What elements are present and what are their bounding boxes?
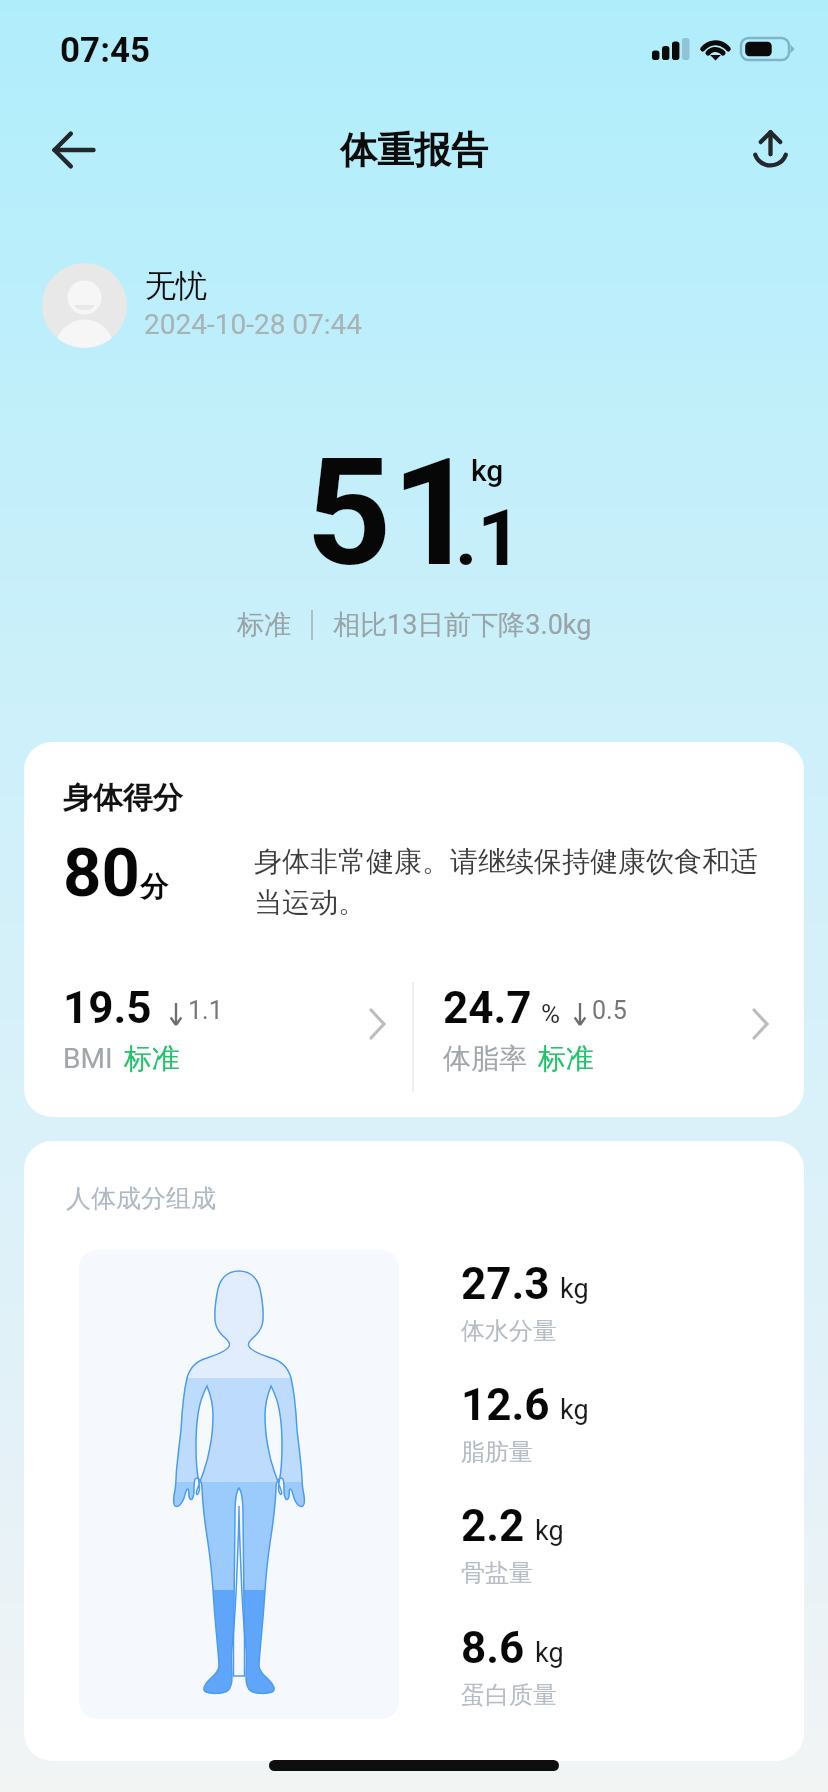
staticText: 07:45 [60, 30, 151, 71]
button[interactable]: Share [730, 110, 810, 190]
staticText: 身体得分 [63, 779, 183, 817]
staticText: kg [535, 1515, 564, 1547]
staticText: 体脂率 [443, 1041, 527, 1076]
button[interactable]: 19.5 [24, 970, 412, 1095]
staticText: .1 [455, 494, 522, 584]
staticText: 24.7 [443, 982, 532, 1034]
staticText: BMI [63, 1042, 113, 1075]
button[interactable]: Back [34, 110, 114, 190]
staticText: 12.6 [461, 1379, 550, 1431]
staticText: 8.6 [461, 1622, 525, 1674]
staticText: 80 [63, 834, 140, 913]
staticText: 0.5 [592, 996, 627, 1025]
staticText: kg [471, 453, 504, 488]
staticText: 27.3 [461, 1258, 550, 1310]
staticText: 人体成分组成 [66, 1183, 216, 1214]
staticText: 2.2 [461, 1500, 525, 1552]
staticText: 身体非常健康。请继续保持健康饮食和适当运动。 [254, 844, 776, 920]
staticText: 相比13日前下降3.0kg [333, 608, 592, 642]
staticText: kg [560, 1394, 589, 1426]
staticText: 2024-10-28 07:44 [144, 308, 363, 341]
staticText: 标准 [538, 1041, 594, 1076]
staticText: 脂肪量 [461, 1437, 533, 1467]
staticText: 无忧 [145, 266, 207, 305]
staticText: 蛋白质量 [461, 1680, 557, 1710]
staticText: kg [535, 1637, 564, 1669]
staticText: 骨盐量 [461, 1558, 533, 1588]
staticText: 51 [306, 426, 477, 601]
staticText: 19.5 [63, 982, 152, 1034]
staticText: 标准 [124, 1041, 180, 1076]
staticText: % [541, 999, 561, 1029]
staticText: 体水分量 [461, 1316, 557, 1346]
button[interactable]: 24.7 [414, 970, 804, 1095]
staticText: kg [560, 1273, 589, 1305]
staticText: 1.1 [188, 996, 223, 1025]
staticText: 分 [140, 869, 168, 904]
staticText: 体重报告 [340, 127, 488, 174]
staticText: 标准 [237, 608, 291, 642]
